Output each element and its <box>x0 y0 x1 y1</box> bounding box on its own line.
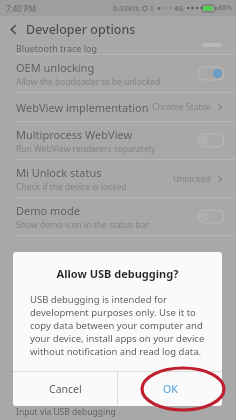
staticText: 88% <box>218 3 232 13</box>
button[interactable]: Toggle off <box>198 134 224 147</box>
staticText: Check if the device is locked <box>16 181 127 193</box>
staticText: Bluetooth trace log <box>16 42 97 54</box>
staticText: Input via USB debugging <box>16 406 116 418</box>
staticText: OK <box>163 382 178 396</box>
button[interactable]: Back <box>0 16 26 42</box>
staticText: Run WebView renderers separately <box>16 143 156 155</box>
staticText: Multiprocess WebView <box>16 127 133 142</box>
button[interactable]: Toggle on <box>198 67 224 80</box>
staticText: Demo mode <box>16 203 80 218</box>
staticText: 0.03K/s <box>113 3 140 13</box>
staticText: WebView implementation <box>16 100 149 115</box>
button[interactable]: Mi Unlock status <box>0 160 236 197</box>
staticText: Allow the bootloader to be unlocked <box>16 76 161 88</box>
staticText: Mi Unlock status <box>16 165 102 180</box>
button[interactable]: Toggle off <box>198 210 224 223</box>
button[interactable]: OEM unlocking <box>0 55 236 92</box>
staticText: USB debugging is intended for developmen… <box>30 293 205 358</box>
staticText: Allow USB debugging? <box>13 266 222 281</box>
button[interactable]: Demo mode <box>0 198 236 235</box>
staticText: Chrome Stable <box>152 101 211 113</box>
button[interactable]: Cancel <box>13 372 117 406</box>
button[interactable]: Multiprocess WebView <box>0 122 236 159</box>
staticText: Unlocked <box>173 173 211 185</box>
staticText: Developer options <box>26 21 136 38</box>
staticText: 7:40 PM <box>6 3 37 14</box>
staticText: OEM unlocking <box>16 60 95 75</box>
staticText: Cancel <box>49 382 82 396</box>
staticText: Show demo icon in the status bar <box>16 219 149 231</box>
button[interactable]: WebView implementation <box>0 93 236 121</box>
staticText: 4G <box>174 3 184 13</box>
button[interactable]: OK <box>118 372 222 406</box>
